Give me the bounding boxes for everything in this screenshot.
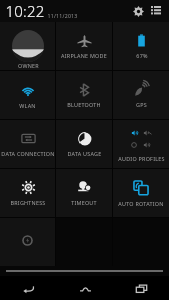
button[interactable]: Profile <box>0 218 55 266</box>
button[interactable]: DATA USAGE <box>56 120 112 168</box>
button[interactable]: BRIGHTNESS <box>0 169 55 217</box>
staticText: AUDIO PROFILES <box>118 155 165 162</box>
button[interactable]: BLUETOOTH <box>56 71 112 119</box>
staticText: WLAN <box>19 102 36 109</box>
staticText: DATA USAGE <box>67 150 102 157</box>
staticText: OWNER <box>18 62 39 69</box>
staticText: TIMEOUT <box>71 199 97 206</box>
button[interactable]: Notifications <box>148 3 164 19</box>
button[interactable]: GPS <box>113 71 169 119</box>
staticText: 11/11/2013 <box>47 12 78 19</box>
button[interactable]: AUDIO PROFILES <box>113 120 169 168</box>
button[interactable]: Settings <box>130 3 146 19</box>
button[interactable]: AUTO ROTATION <box>113 169 169 217</box>
staticText: 10:22 <box>5 1 45 21</box>
button[interactable]: 67% <box>113 22 169 70</box>
button[interactable]: Recents <box>113 276 169 300</box>
staticText: 67% <box>136 52 148 59</box>
staticText: AUTO ROTATION <box>118 200 164 207</box>
staticText: DATA CONNECTION <box>1 150 55 157</box>
staticText: AIRPLANE MODE <box>61 52 107 59</box>
staticText: GPS <box>136 101 147 108</box>
button[interactable]: AIRPLANE MODE <box>56 22 112 70</box>
button[interactable]: Back <box>0 276 57 300</box>
staticText: BRIGHTNESS <box>10 199 46 206</box>
button[interactable]: DATA CONNECTION <box>0 120 55 168</box>
button[interactable]: TIMEOUT <box>56 169 112 217</box>
button[interactable]: Collapse panel <box>0 266 169 276</box>
button[interactable]: WLAN <box>0 71 55 119</box>
button[interactable]: OWNER <box>0 22 55 70</box>
button[interactable]: Home <box>57 276 113 300</box>
staticText: BLUETOOTH <box>67 101 101 108</box>
